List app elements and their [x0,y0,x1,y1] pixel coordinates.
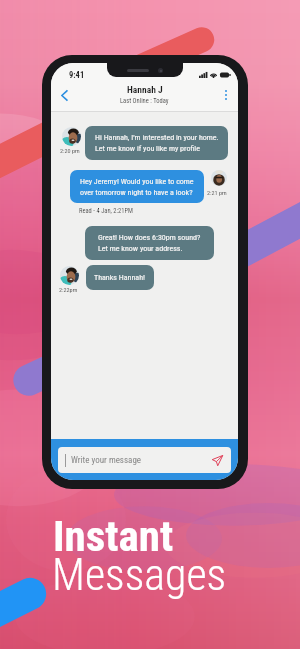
staticText: Last Online : Today [120,97,169,105]
button[interactable]: Great! How does 6:30pm sound? [85,226,214,260]
staticText: Instant [53,511,174,561]
staticText: Thanks Hannah! [94,273,146,282]
button[interactable]: Thanks Hannah! [86,265,154,290]
staticText: 9:41 [69,70,85,80]
staticText: Hi Hannah, I'm interested in your home. [95,133,219,142]
staticText: Great! How does 6:30pm sound? [98,233,201,242]
staticText: 2:22pm [59,286,78,293]
staticText: 2:21 pm [207,189,227,196]
button[interactable]: Hey Jeremy! Would you like to come [70,170,204,203]
staticText: Messages [52,549,227,601]
staticText: Hannah J [127,84,163,95]
staticText: over tomorrow night to have a look? [80,188,193,197]
button[interactable]: Send [208,451,226,469]
staticText: Read - 4 Jan, 2:21PM [79,207,133,215]
button[interactable]: Hi Hannah, I'm interested in your home. [85,126,228,160]
button[interactable]: Back [53,84,75,106]
staticText: Hey Jeremy! Would you like to come [80,177,194,186]
staticText: Let me know your address. [98,244,183,253]
button[interactable]: More options [217,86,235,104]
button[interactable]: Write your message [58,447,231,473]
staticText: Write your message [71,455,142,466]
staticText: Let me know if you like my profile [95,144,200,153]
staticText: 2:20 pm [60,147,80,154]
